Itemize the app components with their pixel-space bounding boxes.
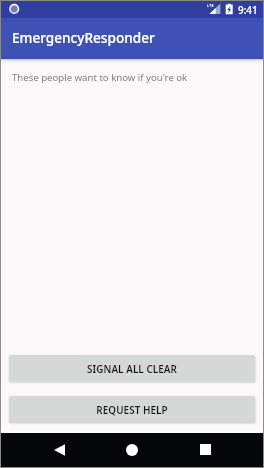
button[interactable]: SIGNAL ALL CLEAR <box>9 355 255 382</box>
staticText: EmergencyResponder <box>12 28 155 47</box>
button[interactable]: Recents <box>187 433 223 467</box>
staticText: REQUEST HELP <box>96 403 168 416</box>
button[interactable]: Home <box>114 433 150 467</box>
staticText: These people want to know if you're ok <box>12 71 188 84</box>
button[interactable]: REQUEST HELP <box>9 396 255 423</box>
staticText: 9:41 <box>238 3 258 16</box>
button[interactable]: Back <box>41 433 77 467</box>
staticText: SIGNAL ALL CLEAR <box>87 362 177 375</box>
